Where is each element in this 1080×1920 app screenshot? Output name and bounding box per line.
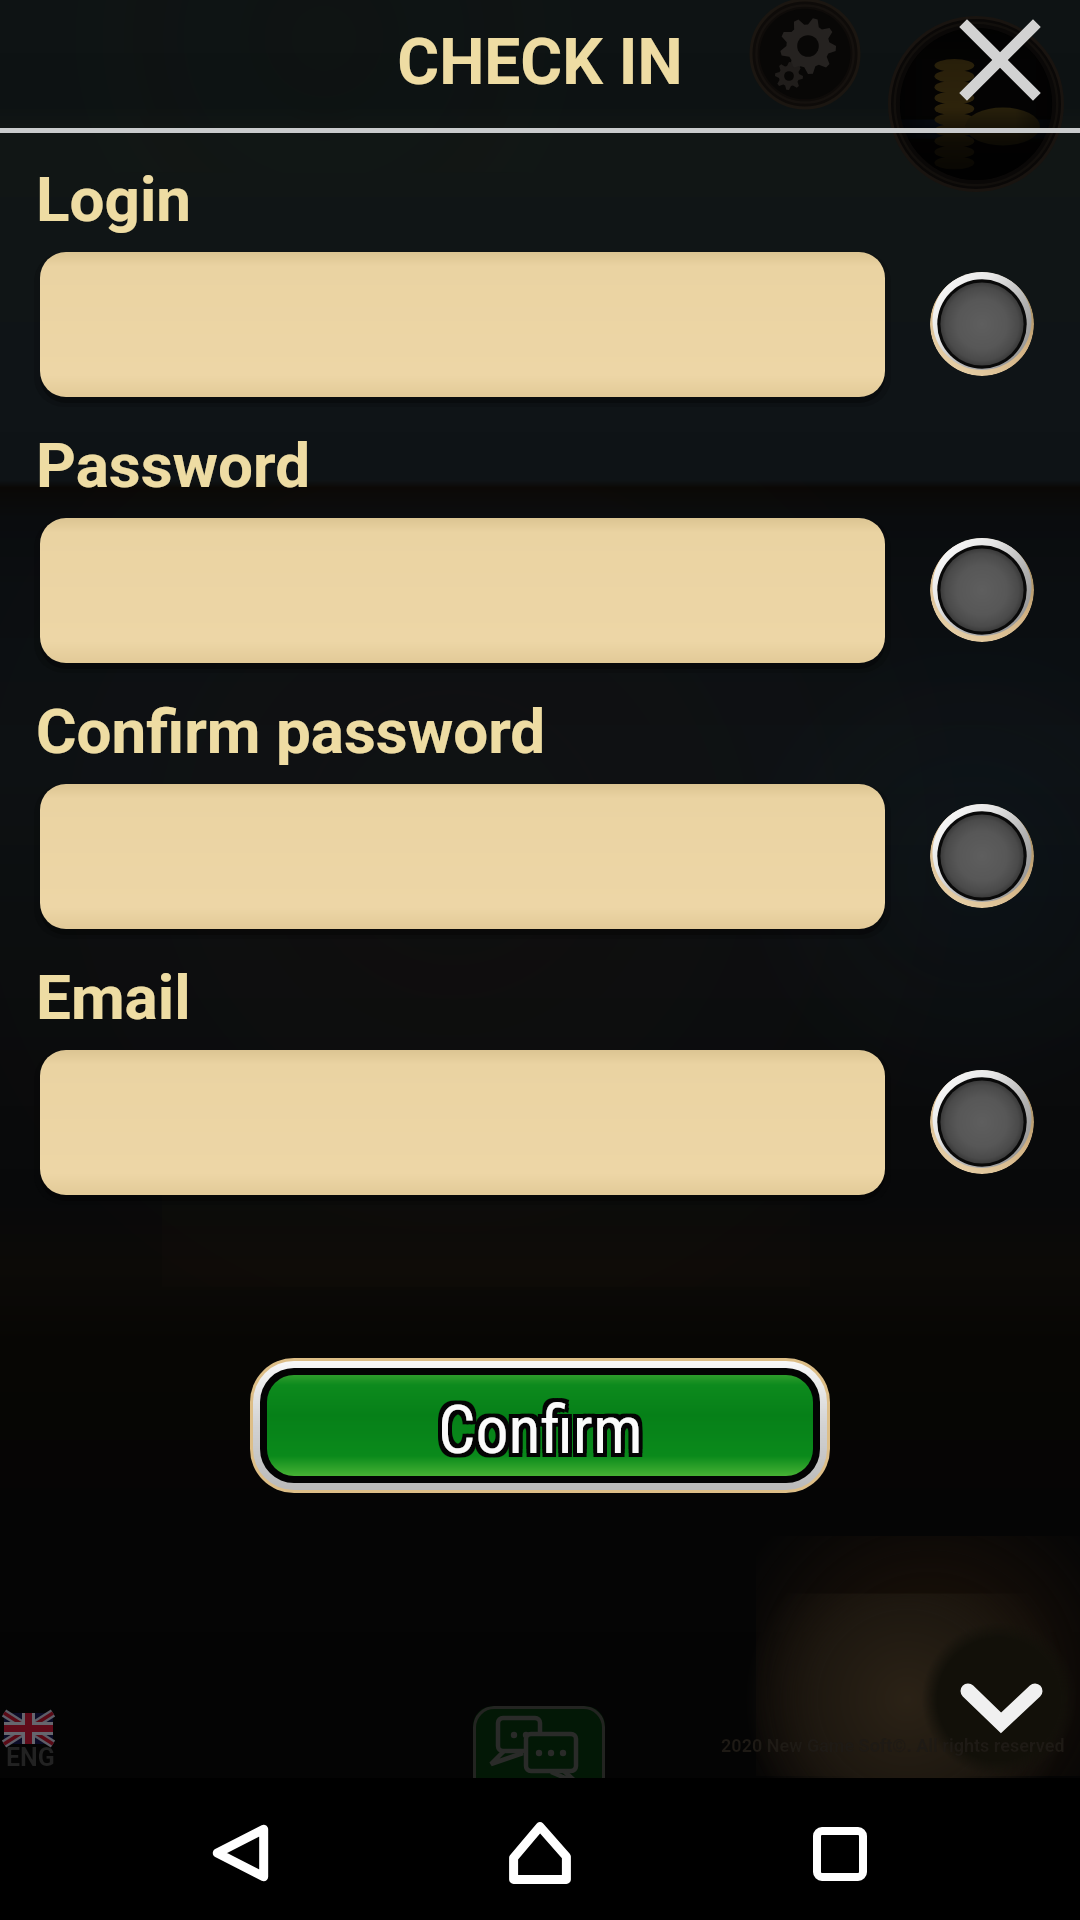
staticText: Confirm	[434, 1392, 639, 1469]
button[interactable]: Help	[930, 538, 1034, 642]
staticText: Confirm password	[36, 695, 546, 768]
button[interactable]: Expand	[946, 1666, 1056, 1776]
staticText: Confirm	[442, 1388, 647, 1465]
button[interactable]: Recent apps	[786, 1800, 894, 1908]
button[interactable]: Language English	[4, 1713, 53, 1773]
button[interactable]: Help	[930, 272, 1034, 376]
staticText: CHECK IN	[0, 25, 1080, 100]
staticText: Confirm	[442, 1392, 647, 1469]
staticText: Password	[36, 429, 311, 502]
button[interactable]: Home	[485, 1798, 595, 1908]
staticText: ENG	[6, 1743, 55, 1772]
button[interactable]: Settings	[745, 0, 865, 114]
staticText: Confirm	[442, 1396, 647, 1473]
button[interactable]: Password input field	[40, 518, 885, 663]
staticText: Confirm	[438, 1388, 643, 1465]
button[interactable]: Email input field	[40, 1050, 885, 1195]
staticText: Email	[36, 961, 191, 1034]
button[interactable]: Confirm	[267, 1375, 813, 1476]
button[interactable]: Back	[187, 1799, 295, 1907]
button[interactable]: Help	[930, 1070, 1034, 1174]
button[interactable]: Chat	[473, 1706, 605, 1802]
staticText: Confirm	[434, 1388, 639, 1465]
staticText: Confirm	[438, 1396, 643, 1473]
button[interactable]: Confirm password input field	[40, 784, 885, 929]
staticText: Login	[36, 163, 192, 236]
staticText: Confirm	[438, 1392, 643, 1469]
button[interactable]: Close	[884, 12, 1068, 196]
button[interactable]: Help	[930, 804, 1034, 908]
button[interactable]: Login input field	[40, 252, 885, 397]
staticText: 2020 New Game Soft©. All rights reserved	[721, 1735, 1065, 1756]
staticText: Confirm	[434, 1396, 639, 1473]
